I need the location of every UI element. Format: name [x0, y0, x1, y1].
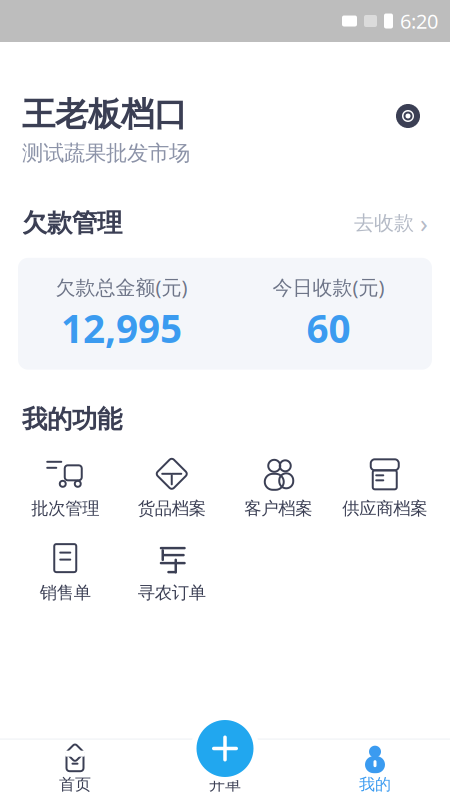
button[interactable]: 设置: [388, 96, 428, 136]
staticText: 货品档案: [138, 498, 206, 519]
button[interactable]: 去收款: [344, 202, 428, 244]
button[interactable]: 首页: [0, 740, 150, 800]
button[interactable]: 供应商档案: [331, 453, 438, 523]
staticText: 我的: [359, 775, 391, 794]
staticText: 批次管理: [31, 498, 99, 519]
staticText: 12,995: [61, 302, 182, 354]
button[interactable]: 客户档案: [225, 453, 331, 523]
button[interactable]: 我的: [300, 740, 450, 800]
staticText: 销售单: [40, 582, 91, 603]
staticText: 开单: [209, 775, 241, 794]
button[interactable]: 货品档案: [118, 453, 225, 523]
staticText: 欠款总金额(元): [55, 274, 187, 300]
staticText: 客户档案: [244, 498, 312, 519]
staticText: 6:20: [400, 8, 438, 34]
staticText: ›: [420, 206, 428, 240]
staticText: 测试蔬果批发市场: [22, 140, 190, 166]
staticText: 首页: [59, 775, 91, 794]
staticText: 王老板档口: [22, 94, 187, 135]
staticText: 欠款管理: [22, 207, 122, 238]
button[interactable]: 销售单: [12, 537, 118, 607]
staticText: 今日收款(元): [272, 274, 384, 300]
staticText: 去收款: [354, 211, 414, 235]
button[interactable]: 寻农订单: [118, 537, 225, 607]
staticText: 我的功能: [22, 404, 122, 435]
button[interactable]: 开单: [191, 714, 259, 782]
staticText: 寻农订单: [138, 582, 206, 603]
staticText: 供应商档案: [342, 498, 427, 519]
button[interactable]: 批次管理: [12, 453, 118, 523]
staticText: 60: [306, 302, 350, 354]
